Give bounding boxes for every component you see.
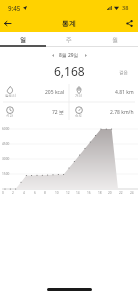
staticText: 6 — [34, 191, 36, 195]
staticText: 4500 — [2, 142, 10, 146]
button[interactable]: Back — [1, 17, 14, 30]
staticText: 6,168 — [54, 63, 85, 79]
staticText: 12 — [66, 191, 70, 195]
button[interactable]: 월 — [92, 32, 138, 47]
staticText: 24 — [130, 191, 134, 195]
staticText: 9:45 — [8, 4, 21, 12]
staticText: 16 — [87, 191, 91, 195]
staticText: 22 — [119, 191, 123, 195]
staticText: 시간 — [6, 114, 14, 119]
staticText: 14 — [76, 191, 80, 195]
staticText: 8월 29일 — [59, 52, 79, 59]
button[interactable]: 주 — [46, 32, 92, 47]
staticText: 38 — [122, 4, 129, 12]
staticText: 2.78 km/h — [110, 109, 134, 116]
staticText: 20 — [108, 191, 112, 195]
staticText: 주 — [66, 36, 72, 44]
staticText: 거리 — [75, 94, 83, 99]
staticText: 4.81 km — [115, 89, 134, 96]
staticText: 8 — [44, 191, 46, 195]
staticText: 6000 — [2, 127, 10, 131]
staticText: 3000 — [2, 157, 10, 161]
staticText: 10 — [55, 191, 59, 195]
staticText: 일 — [20, 36, 26, 44]
staticText: 4 — [23, 191, 25, 195]
staticText: 1500 — [2, 172, 10, 176]
button[interactable]: 일 — [0, 32, 46, 47]
button[interactable]: Next day — [81, 51, 90, 60]
staticText: 18 — [98, 191, 102, 195]
button[interactable]: Previous day — [48, 51, 57, 60]
button[interactable]: Share — [123, 17, 136, 30]
staticText: 통계 — [62, 19, 76, 28]
staticText: 걸음 — [119, 70, 129, 76]
staticText: 속도 — [75, 114, 83, 119]
staticText: 칼로리 — [5, 94, 16, 99]
staticText: 0 — [2, 191, 4, 195]
staticText: 2 — [12, 191, 14, 195]
staticText: 72 분 — [52, 109, 65, 116]
staticText: 205 kcal — [45, 89, 65, 96]
staticText: 월 — [112, 36, 118, 44]
